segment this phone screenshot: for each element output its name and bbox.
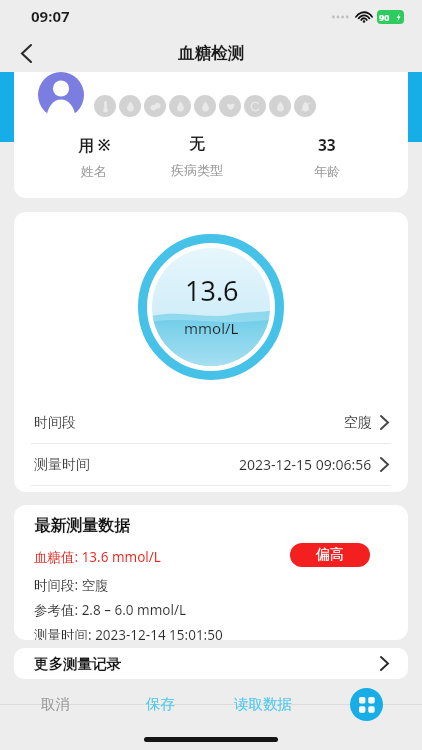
- staticText: 取消: [41, 695, 70, 713]
- button[interactable]: Indicator 3: [144, 95, 166, 117]
- staticText: 空腹: [344, 414, 372, 432]
- staticText: 时间段: [34, 414, 76, 432]
- button[interactable]: Grid: [350, 688, 383, 721]
- button[interactable]: 取消: [25, 691, 85, 717]
- button[interactable]: 更多测量记录: [14, 648, 408, 679]
- button[interactable]: Indicator 8: [269, 95, 291, 117]
- staticText: 测量时间: 2023-12-14 15:01:50: [34, 626, 223, 640]
- staticText: 年龄: [314, 163, 340, 179]
- button[interactable]: Indicator 9: [294, 95, 316, 117]
- button[interactable]: Indicator 1: [94, 95, 116, 117]
- staticText: 2023-12-15 09:06:56: [239, 455, 372, 474]
- staticText: 无: [189, 134, 205, 154]
- staticText: 13.6: [185, 272, 239, 309]
- button[interactable]: 保存: [130, 691, 190, 717]
- staticText: 90: [379, 11, 390, 23]
- button[interactable]: 读取数据: [223, 691, 303, 717]
- staticText: 血糖检测: [178, 43, 244, 64]
- button[interactable]: Indicator 4: [169, 95, 191, 117]
- button[interactable]: Indicator 2: [119, 95, 141, 117]
- staticText: 读取数据: [234, 695, 292, 713]
- button[interactable]: Indicator 5: [194, 95, 216, 117]
- staticText: 33: [318, 134, 336, 155]
- button[interactable]: Indicator 7: [244, 95, 266, 117]
- staticText: 测量时间: [34, 456, 90, 474]
- staticText: 更多测量记录: [34, 655, 121, 673]
- staticText: 疾病类型: [171, 162, 223, 178]
- staticText: 最新测量数据: [34, 516, 130, 536]
- staticText: 保存: [146, 695, 175, 713]
- button[interactable]: 测量时间: [14, 444, 408, 485]
- staticText: 09:07: [31, 6, 70, 26]
- staticText: 时间段: 空腹: [34, 576, 109, 594]
- staticText: 偏高: [316, 546, 344, 564]
- staticText: 血糖值: 13.6 mmol/L: [34, 548, 161, 566]
- staticText: 姓名: [81, 163, 107, 179]
- staticText: mmol/L: [184, 318, 239, 338]
- button[interactable]: Back: [6, 34, 46, 72]
- staticText: 用 ※: [78, 134, 111, 155]
- staticText: 参考值: 2.8 – 6.0 mmol/L: [34, 601, 187, 619]
- button[interactable]: Indicator 6: [219, 95, 241, 117]
- button[interactable]: 偏高: [290, 543, 370, 567]
- button[interactable]: 时间段: [14, 402, 408, 443]
